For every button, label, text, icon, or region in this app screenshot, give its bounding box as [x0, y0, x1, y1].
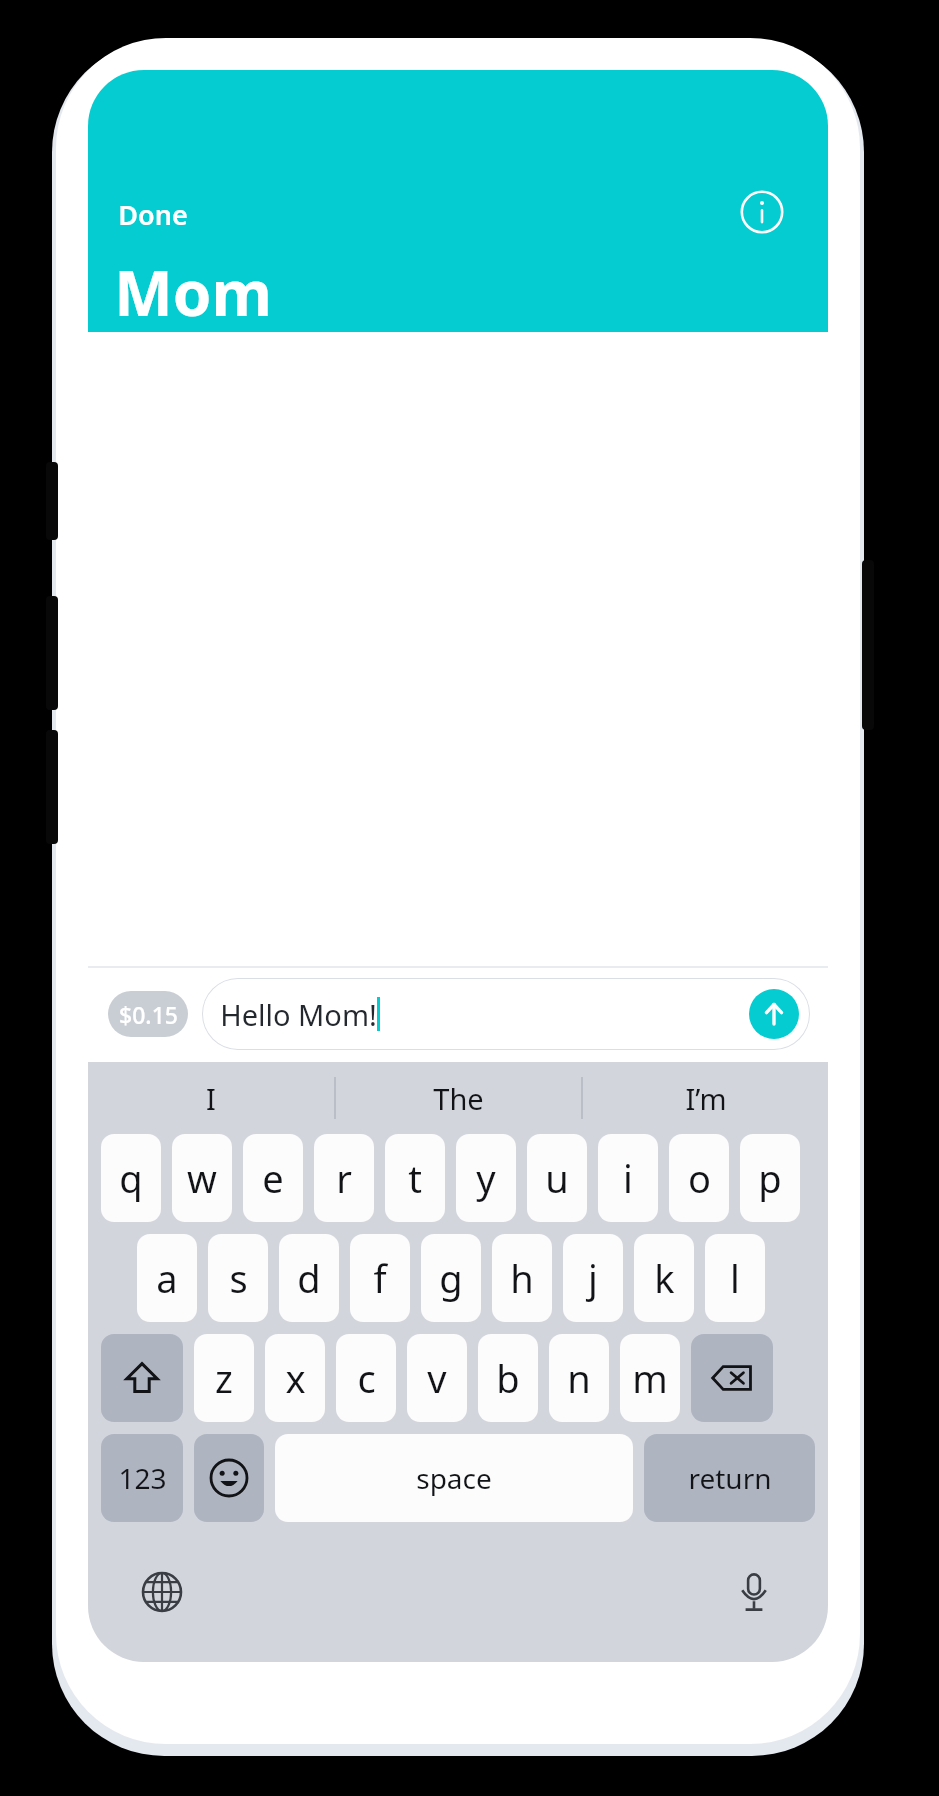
button[interactable]: Change keyboard: [132, 1562, 192, 1622]
staticText: a: [156, 1252, 178, 1304]
button[interactable]: w: [172, 1134, 232, 1222]
button[interactable]: h: [492, 1234, 552, 1322]
staticText: s: [229, 1252, 248, 1304]
staticText: c: [357, 1352, 376, 1404]
button[interactable]: d: [279, 1234, 339, 1322]
button[interactable]: e: [243, 1134, 303, 1222]
staticText: q: [119, 1152, 143, 1204]
staticText: Mom: [114, 250, 272, 334]
staticText: r: [336, 1152, 352, 1204]
button[interactable]: p: [740, 1134, 800, 1222]
button[interactable]: v: [407, 1334, 467, 1422]
button[interactable]: t: [385, 1134, 445, 1222]
button[interactable]: Backspace: [691, 1334, 773, 1422]
button[interactable]: a: [137, 1234, 197, 1322]
button[interactable]: c: [336, 1334, 396, 1422]
button[interactable]: Shift: [101, 1334, 183, 1422]
button[interactable]: u: [527, 1134, 587, 1222]
button[interactable]: i: [598, 1134, 658, 1222]
button[interactable]: Dictate: [724, 1562, 784, 1622]
staticText: f: [373, 1252, 387, 1304]
staticText: space: [416, 1459, 492, 1497]
staticText: I’m: [685, 1079, 727, 1118]
staticText: g: [439, 1252, 463, 1304]
staticText: v: [427, 1352, 447, 1404]
staticText: Done: [118, 196, 188, 233]
staticText: o: [688, 1152, 711, 1204]
button[interactable]: l: [705, 1234, 765, 1322]
staticText: h: [510, 1252, 534, 1304]
button[interactable]: f: [350, 1234, 410, 1322]
button[interactable]: I: [88, 1062, 334, 1134]
button[interactable]: Info: [728, 178, 796, 246]
button[interactable]: $0.15: [108, 991, 188, 1037]
staticText: p: [758, 1152, 782, 1204]
staticText: y: [476, 1152, 496, 1204]
button[interactable]: 123: [101, 1434, 183, 1522]
button[interactable]: z: [194, 1334, 254, 1422]
button[interactable]: I’m: [583, 1062, 828, 1134]
button[interactable]: return: [644, 1434, 815, 1522]
staticText: l: [730, 1252, 740, 1304]
staticText: return: [688, 1459, 772, 1497]
button[interactable]: space: [275, 1434, 633, 1522]
button[interactable]: y: [456, 1134, 516, 1222]
staticText: u: [545, 1152, 569, 1204]
button[interactable]: Send: [749, 989, 799, 1039]
button[interactable]: g: [421, 1234, 481, 1322]
button[interactable]: s: [208, 1234, 268, 1322]
button[interactable]: The: [336, 1062, 581, 1134]
button[interactable]: o: [669, 1134, 729, 1222]
button[interactable]: r: [314, 1134, 374, 1222]
staticText: e: [262, 1152, 284, 1204]
button[interactable]: n: [549, 1334, 609, 1422]
staticText: i: [623, 1152, 633, 1204]
staticText: b: [496, 1352, 520, 1404]
button[interactable]: m: [620, 1334, 680, 1422]
button[interactable]: Hello Mom!: [202, 978, 810, 1050]
staticText: $0.15: [119, 999, 178, 1030]
staticText: x: [285, 1352, 306, 1404]
staticText: The: [433, 1079, 484, 1118]
staticText: Hello Mom!: [220, 995, 377, 1034]
button[interactable]: x: [265, 1334, 325, 1422]
staticText: j: [588, 1252, 598, 1304]
button[interactable]: b: [478, 1334, 538, 1422]
staticText: 123: [118, 1459, 167, 1497]
staticText: w: [187, 1152, 217, 1204]
button[interactable]: Done: [112, 190, 194, 239]
staticText: t: [408, 1152, 422, 1204]
button[interactable]: k: [634, 1234, 694, 1322]
staticText: m: [632, 1352, 668, 1404]
button[interactable]: j: [563, 1234, 623, 1322]
button[interactable]: Emoji: [194, 1434, 264, 1522]
staticText: k: [654, 1252, 675, 1304]
button[interactable]: q: [101, 1134, 161, 1222]
staticText: z: [215, 1352, 233, 1404]
staticText: d: [297, 1252, 321, 1304]
staticText: I: [206, 1079, 216, 1118]
staticText: n: [567, 1352, 591, 1404]
